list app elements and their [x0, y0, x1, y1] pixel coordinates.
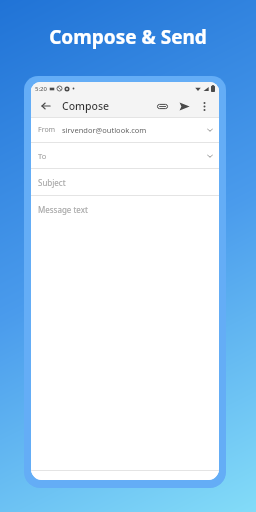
staticText: 5:20 — [35, 85, 47, 93]
staticText: From — [38, 125, 56, 135]
staticText: Compose — [62, 99, 110, 113]
button[interactable]: Message text — [31, 196, 219, 222]
staticText: To — [38, 151, 47, 161]
button[interactable]: To — [31, 143, 219, 168]
button[interactable]: From — [31, 118, 219, 142]
button[interactable]: Attach file — [153, 97, 171, 115]
button[interactable]: Send — [175, 97, 193, 115]
staticText: Message text — [38, 204, 88, 215]
staticText: sirvendor@outlook.com — [62, 125, 147, 135]
staticText: Subject — [38, 177, 66, 188]
button[interactable]: More options — [195, 97, 213, 115]
button[interactable]: Back — [37, 97, 55, 115]
staticText: Compose & Send — [0, 24, 256, 50]
button[interactable]: Subject — [31, 169, 219, 195]
